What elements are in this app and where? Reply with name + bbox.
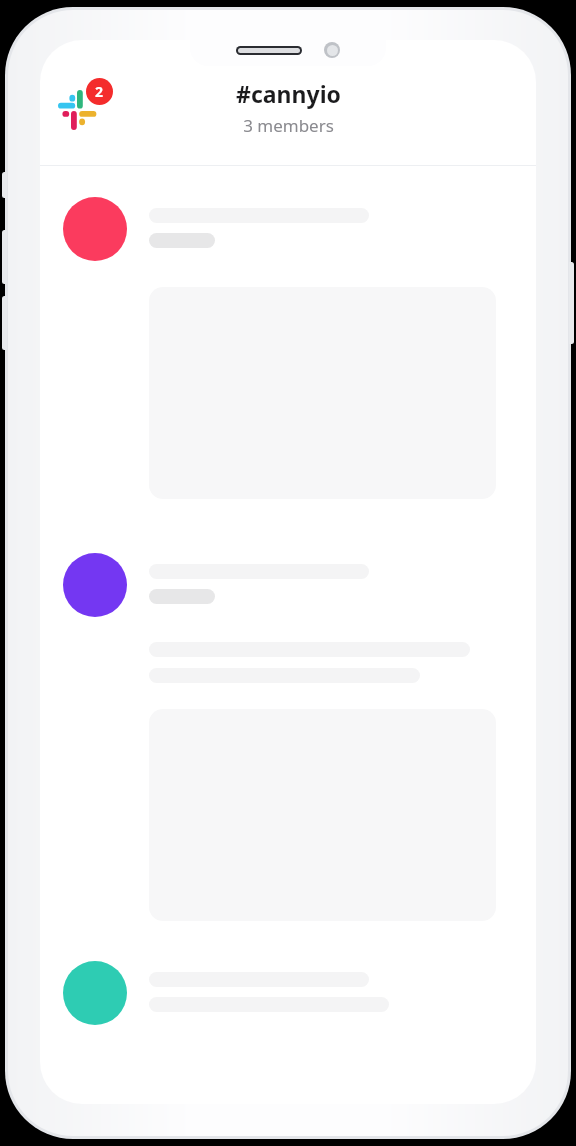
button[interactable] bbox=[63, 553, 496, 921]
button[interactable] bbox=[63, 961, 496, 1025]
staticText: 3 members bbox=[243, 114, 334, 137]
staticText: 2 bbox=[95, 82, 104, 101]
button[interactable]: #cannyio bbox=[236, 78, 341, 137]
button[interactable]: Slack workspace, 2 unread bbox=[58, 78, 114, 134]
staticText: #cannyio bbox=[236, 78, 341, 109]
button[interactable] bbox=[63, 197, 496, 499]
